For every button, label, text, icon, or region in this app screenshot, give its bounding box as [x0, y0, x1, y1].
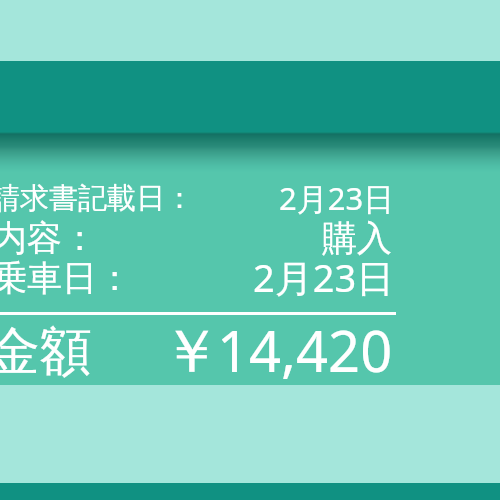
button[interactable]: Receipt summary card	[0, 132, 500, 385]
staticText: 乗車日：	[0, 256, 132, 300]
button[interactable]	[0, 318, 500, 380]
button[interactable]	[0, 254, 500, 298]
button[interactable]	[0, 214, 500, 254]
staticText: 請求書記載日：	[0, 180, 194, 217]
button[interactable]	[0, 176, 500, 214]
staticText: 2月23日	[279, 177, 395, 219]
staticText: ￥	[161, 314, 221, 390]
staticText: 金額	[0, 319, 92, 385]
staticText: 2月23日	[253, 251, 395, 303]
staticText: 14,420	[217, 312, 393, 388]
staticText: 購入	[322, 216, 392, 260]
staticText: 内容：	[0, 216, 97, 260]
